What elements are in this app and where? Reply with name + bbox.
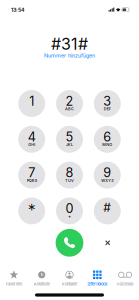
button[interactable]: 6 bbox=[94, 126, 121, 153]
staticText: 2 bbox=[65, 93, 73, 109]
staticText: 4 bbox=[28, 129, 36, 144]
staticText: Ziffernblock bbox=[87, 282, 107, 286]
staticText: Voicemail bbox=[117, 282, 134, 286]
button[interactable]: 0 bbox=[56, 197, 83, 224]
button[interactable]: 3 bbox=[94, 90, 121, 117]
button[interactable]: 9 bbox=[94, 162, 121, 189]
staticText: 7 bbox=[28, 165, 35, 180]
button[interactable]: Favoriten bbox=[0, 266, 28, 290]
button[interactable]: Löschen bbox=[96, 229, 120, 257]
button[interactable]: ∗ bbox=[18, 197, 45, 224]
button[interactable]: 8 bbox=[56, 162, 83, 189]
button[interactable]: 1 bbox=[18, 90, 45, 117]
button[interactable]: # bbox=[94, 197, 121, 224]
staticText: #31# bbox=[51, 34, 88, 54]
staticText: + bbox=[68, 213, 71, 219]
button[interactable]: 5 bbox=[56, 126, 83, 153]
button[interactable]: Nummer hinzufügen bbox=[44, 53, 95, 58]
button[interactable]: Anrufliste bbox=[28, 266, 56, 290]
staticText: MNO bbox=[102, 142, 112, 147]
staticText: ABC bbox=[65, 107, 74, 111]
staticText: 1 bbox=[29, 93, 34, 109]
staticText: # bbox=[103, 200, 111, 214]
staticText: ∗ bbox=[27, 201, 36, 213]
button[interactable]: Voicemail bbox=[111, 266, 139, 290]
staticText: 5 bbox=[65, 129, 73, 144]
staticText: JKL bbox=[66, 142, 73, 147]
staticText: PQRS bbox=[27, 178, 37, 183]
staticText: DEF bbox=[104, 107, 111, 111]
staticText: 9 bbox=[103, 165, 111, 180]
button[interactable]: Anrufen bbox=[56, 229, 83, 257]
staticText: 6 bbox=[103, 129, 111, 144]
staticText: GHI bbox=[28, 142, 35, 147]
staticText: 13:54 bbox=[11, 7, 25, 13]
staticText: 8 bbox=[65, 165, 73, 180]
staticText: 0 bbox=[65, 201, 73, 216]
staticText: TUV bbox=[65, 178, 74, 183]
staticText: Anrufliste bbox=[34, 282, 50, 286]
button[interactable]: Kontakte bbox=[56, 266, 83, 290]
staticText: WXYZ bbox=[101, 178, 113, 183]
button[interactable]: Ziffernblock bbox=[83, 266, 111, 290]
button[interactable]: 7 bbox=[18, 162, 45, 189]
staticText: 3 bbox=[103, 93, 111, 109]
staticText: Favoriten bbox=[6, 282, 22, 286]
button[interactable]: 4 bbox=[18, 126, 45, 153]
button[interactable]: 2 bbox=[56, 90, 83, 117]
staticText: Nummer hinzufügen bbox=[44, 52, 95, 59]
staticText: Kontakte bbox=[62, 282, 77, 286]
